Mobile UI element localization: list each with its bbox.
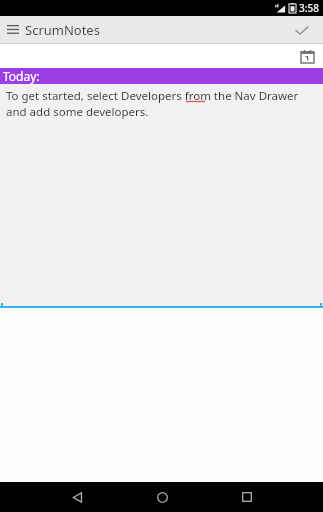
button[interactable]: Home (145, 482, 179, 512)
button[interactable]: Save note (289, 17, 315, 43)
button[interactable]: To get started, select Developers from t… (0, 84, 323, 308)
button[interactable]: Back (60, 482, 94, 512)
staticText: Today: (3, 68, 40, 84)
staticText: ScrumNotes (25, 21, 100, 39)
button[interactable]: Pick date (296, 45, 318, 67)
button[interactable]: Open navigation drawer (3, 20, 23, 40)
staticText: 3:58 (299, 1, 319, 15)
button[interactable]: Today: (0, 68, 323, 84)
button[interactable]: Recent apps (230, 482, 264, 512)
staticText: To get started, select Developers from t… (6, 88, 313, 119)
